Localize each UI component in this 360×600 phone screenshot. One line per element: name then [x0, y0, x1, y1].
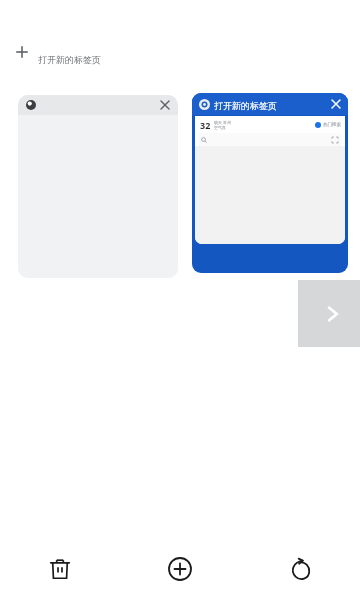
- button[interactable]: Close tab: [156, 96, 174, 114]
- button[interactable]: 打开新的标签页: [192, 93, 348, 273]
- button[interactable]: Close all tabs: [38, 547, 82, 591]
- button[interactable]: Close tab: [327, 95, 345, 113]
- button[interactable]: New tab: [10, 42, 105, 62]
- button[interactable]: Next: [298, 280, 360, 347]
- staticText: 空气良: [214, 125, 226, 130]
- button[interactable]: New tab: [158, 547, 202, 591]
- staticText: 32: [200, 119, 211, 131]
- staticText: 打开新的标签页: [214, 100, 277, 111]
- other: New tab: [14, 44, 30, 60]
- button[interactable]: Undo: [278, 547, 322, 591]
- button[interactable]: [198, 133, 342, 146]
- button[interactable]: Close tab: [18, 95, 178, 278]
- staticText: 打开新的标签页: [38, 54, 101, 65]
- staticText: 晴天 常州: [214, 120, 232, 125]
- staticText: 热门搜索: [323, 122, 341, 128]
